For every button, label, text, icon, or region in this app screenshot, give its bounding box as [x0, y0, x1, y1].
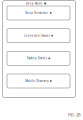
button[interactable]: Tracking Devices [7, 51, 70, 65]
staticText: Connected Devices [24, 34, 50, 37]
staticText: FIG. 2B [68, 112, 81, 117]
staticText: Tracking Devices [27, 57, 47, 60]
button[interactable]: Sleep Reminder [7, 6, 70, 20]
staticText: Sleep Reminder [25, 11, 48, 15]
button[interactable]: Mobile Discovery [7, 74, 70, 88]
button[interactable]: Connected Devices [7, 29, 70, 43]
staticText: Sleep Mode [26, 2, 43, 5]
staticText: Mobile Discovery [25, 79, 48, 83]
